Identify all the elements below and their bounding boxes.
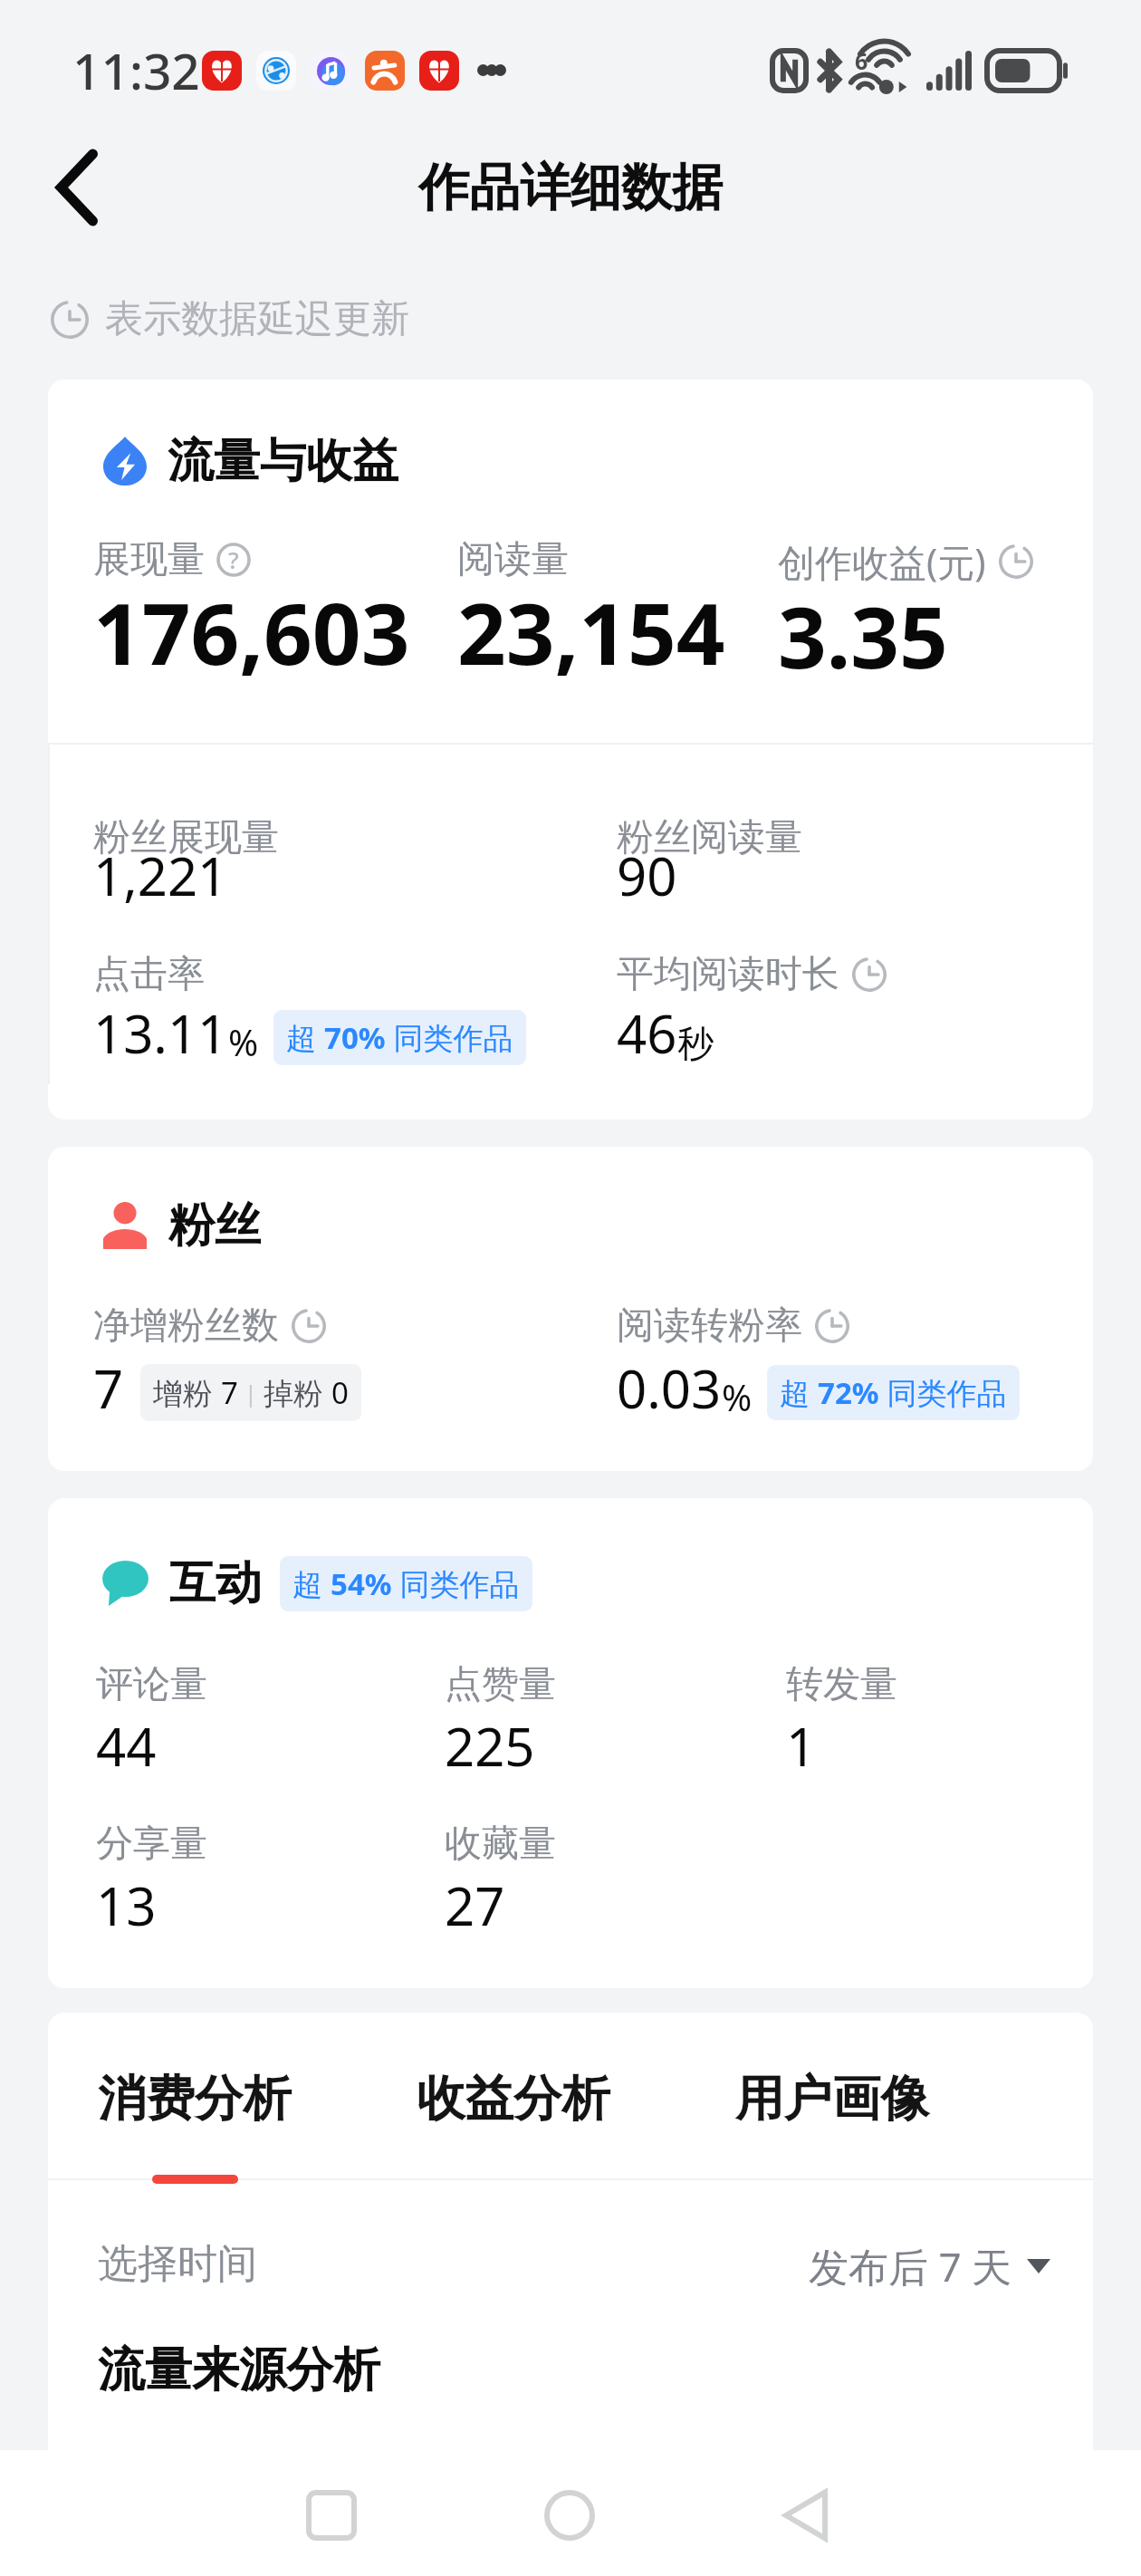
staticText: ?: [228, 543, 239, 575]
staticText: 点击率: [93, 951, 205, 998]
staticText: 阅读量: [457, 536, 569, 583]
staticText: 90: [617, 840, 677, 911]
staticText: 发布后 7 天: [809, 2239, 1012, 2293]
staticText: 掉粉: [264, 1372, 331, 1413]
staticText: 6⁺: [855, 45, 877, 76]
staticText: 创作收益(元): [778, 536, 986, 587]
staticText: 分享量: [96, 1821, 207, 1868]
button[interactable]: 消费分析: [98, 2068, 292, 2129]
staticText: 阅读转粉率: [617, 1302, 802, 1350]
staticText: 用户画像: [735, 2068, 929, 2129]
staticText: 转发量: [786, 1661, 897, 1708]
staticText: 作品详细数据: [418, 156, 723, 220]
staticText: 54%: [331, 1563, 392, 1604]
staticText: 增粉: [153, 1372, 221, 1413]
staticText: 3.35: [778, 578, 948, 694]
staticText: 选择时间: [98, 2239, 257, 2289]
staticText: 46: [617, 997, 677, 1069]
staticText: 1,221: [93, 840, 228, 911]
staticText: 超: [292, 1563, 331, 1604]
staticText: 互动: [169, 1554, 262, 1612]
staticText: 72%: [818, 1372, 879, 1413]
staticText: 0: [331, 1372, 349, 1413]
staticText: |: [238, 1377, 264, 1408]
staticText: 超: [286, 1017, 324, 1058]
staticText: 0.03: [617, 1352, 722, 1424]
staticText: 同类作品: [879, 1372, 1007, 1413]
staticText: 同类作品: [392, 1563, 520, 1604]
button[interactable]: Home: [506, 2452, 633, 2576]
staticText: 净增粉丝数: [93, 1302, 279, 1350]
staticText: 流量来源分析: [98, 2341, 380, 2400]
staticText: 粉丝展现量: [93, 814, 279, 861]
staticText: 13: [96, 1870, 157, 1941]
button[interactable]: 用户画像: [735, 2068, 929, 2129]
button[interactable]: Back: [18, 141, 136, 234]
staticText: %: [722, 1372, 753, 1421]
staticText: 收藏量: [445, 1821, 556, 1868]
button[interactable]: 发布后 7 天: [809, 2239, 1050, 2293]
staticText: 同类作品: [386, 1017, 513, 1058]
staticText: 7: [221, 1372, 238, 1413]
staticText: 超: [780, 1372, 818, 1413]
staticText: 流量与收益: [168, 432, 398, 490]
staticText: 消费分析: [98, 2068, 292, 2129]
staticText: 23,154: [457, 574, 725, 690]
staticText: 7: [93, 1352, 124, 1424]
staticText: 44: [96, 1710, 157, 1782]
staticText: 1: [786, 1710, 817, 1782]
staticText: 秒: [677, 1021, 714, 1066]
button[interactable]: 收益分析: [417, 2068, 610, 2129]
staticText: 27: [445, 1870, 505, 1941]
staticText: 13.11: [93, 997, 228, 1069]
staticText: 平均阅读时长: [617, 951, 839, 998]
staticText: 粉丝阅读量: [617, 814, 802, 861]
button[interactable]: Back: [742, 2452, 868, 2576]
staticText: 176,603: [93, 574, 410, 690]
staticText: 225: [445, 1710, 535, 1782]
staticText: 11:32: [72, 36, 200, 104]
staticText: 评论量: [96, 1661, 207, 1708]
staticText: 70%: [324, 1017, 386, 1058]
staticText: 粉丝: [168, 1197, 261, 1254]
staticText: 表示数据延迟更新: [105, 295, 409, 343]
staticText: 点赞量: [445, 1661, 556, 1708]
staticText: 收益分析: [417, 2068, 610, 2129]
staticText: %: [228, 1017, 259, 1066]
staticText: 展现量: [93, 536, 205, 583]
button[interactable]: Recents: [268, 2452, 395, 2576]
